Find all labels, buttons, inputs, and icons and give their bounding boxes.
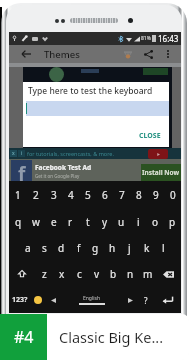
staticText: y bbox=[102, 215, 108, 229]
staticText: f bbox=[77, 241, 81, 255]
button[interactable]: t bbox=[79, 208, 96, 235]
button[interactable]: z bbox=[35, 261, 53, 287]
staticText: f bbox=[18, 161, 26, 182]
button[interactable]: 123? bbox=[9, 287, 31, 313]
staticText: k bbox=[144, 241, 150, 255]
staticText: ? bbox=[144, 295, 148, 306]
staticText: e bbox=[51, 215, 57, 229]
staticText: 7 bbox=[119, 188, 125, 202]
staticText: 5 bbox=[85, 188, 91, 202]
button[interactable]: g bbox=[87, 235, 104, 261]
staticText: u bbox=[118, 215, 125, 229]
button[interactable]: Close ad bbox=[10, 150, 17, 157]
button[interactable]: p bbox=[164, 208, 181, 235]
staticText: Type here to test the keyboard bbox=[28, 85, 153, 97]
staticText: #4 bbox=[14, 326, 34, 348]
staticText: 4 bbox=[68, 188, 74, 202]
button[interactable]: Enter bbox=[154, 287, 181, 313]
button[interactable]: 6 bbox=[96, 181, 113, 208]
button[interactable]: 9 bbox=[147, 181, 164, 208]
button[interactable]: 3 bbox=[45, 181, 62, 208]
staticText: 8 bbox=[136, 188, 142, 202]
button[interactable]: h bbox=[104, 235, 121, 261]
button[interactable]: x bbox=[53, 261, 71, 287]
button[interactable]: d bbox=[53, 235, 70, 261]
staticText: n bbox=[127, 267, 134, 281]
button[interactable]: o bbox=[147, 208, 164, 235]
staticText: g bbox=[92, 241, 99, 255]
staticText: b bbox=[110, 267, 117, 281]
button[interactable]: Space bbox=[61, 287, 122, 313]
button[interactable]: Shift bbox=[9, 261, 35, 287]
staticText: for tutorials, screencasts, & more. bbox=[27, 150, 114, 157]
button[interactable]: q bbox=[9, 208, 27, 235]
staticText: r bbox=[68, 215, 73, 229]
button[interactable]: b bbox=[105, 261, 122, 287]
button[interactable]: 8 bbox=[130, 181, 147, 208]
staticText: t bbox=[86, 215, 90, 229]
button[interactable]: v bbox=[88, 261, 105, 287]
staticText: English bbox=[83, 295, 101, 302]
staticText: c bbox=[77, 267, 82, 281]
button[interactable]: r bbox=[62, 208, 79, 235]
button[interactable]: w bbox=[27, 208, 45, 235]
staticText: 0 bbox=[170, 188, 176, 202]
staticText: v bbox=[94, 267, 100, 281]
button[interactable]: More options bbox=[162, 45, 174, 63]
button[interactable]: Back bbox=[18, 45, 34, 63]
button[interactable]: #4 bbox=[0, 314, 189, 360]
button[interactable]: Previous language bbox=[45, 287, 61, 313]
staticText: 2 bbox=[33, 188, 39, 202]
staticText: l bbox=[162, 241, 165, 255]
button[interactable]: Apply theme bbox=[120, 45, 136, 63]
staticText: 16:43 bbox=[158, 33, 179, 44]
button[interactable]: 4 bbox=[62, 181, 79, 208]
staticText: z bbox=[42, 267, 47, 281]
staticText: p bbox=[169, 215, 176, 229]
staticText: q bbox=[15, 215, 22, 229]
staticText: a bbox=[25, 241, 31, 255]
button[interactable]: 7 bbox=[113, 181, 130, 208]
staticText: i bbox=[137, 215, 140, 229]
button[interactable]: Backspace bbox=[156, 261, 181, 287]
button[interactable]: m bbox=[139, 261, 156, 287]
staticText: CLOSE bbox=[139, 131, 161, 141]
staticText: d bbox=[58, 241, 65, 255]
button[interactable]: u bbox=[113, 208, 130, 235]
button[interactable]: s bbox=[36, 235, 53, 261]
button[interactable]: Install Now bbox=[141, 164, 181, 181]
button[interactable]: 5 bbox=[79, 181, 96, 208]
button[interactable]: c bbox=[71, 261, 88, 287]
staticText: m bbox=[143, 267, 153, 281]
button[interactable]: j bbox=[121, 235, 138, 261]
staticText: j bbox=[128, 241, 131, 255]
staticText: x bbox=[59, 267, 65, 281]
button[interactable]: 0 bbox=[164, 181, 181, 208]
button[interactable]: 2 bbox=[27, 181, 45, 208]
button[interactable]: y bbox=[96, 208, 113, 235]
staticText: 1 bbox=[15, 188, 21, 202]
staticText: x bbox=[12, 150, 15, 157]
staticText: h bbox=[109, 241, 116, 255]
staticText: Facebook Test Ad bbox=[35, 163, 92, 172]
button[interactable]: a bbox=[19, 235, 36, 261]
button[interactable]: Emoji bbox=[31, 287, 45, 313]
button[interactable]: Next language bbox=[122, 287, 138, 313]
button[interactable]: n bbox=[122, 261, 139, 287]
button[interactable]: Share bbox=[141, 45, 156, 63]
staticText: o bbox=[152, 215, 159, 229]
staticText: 6 bbox=[102, 188, 108, 202]
button[interactable]: ? bbox=[138, 287, 154, 313]
button[interactable]: i bbox=[130, 208, 147, 235]
staticText: 9 bbox=[153, 188, 159, 202]
button[interactable]: 1 bbox=[9, 181, 27, 208]
staticText: 3 bbox=[51, 188, 57, 202]
staticText: Install Now bbox=[142, 168, 180, 177]
button[interactable]: e bbox=[45, 208, 62, 235]
button[interactable]: k bbox=[138, 235, 155, 261]
button[interactable]: f bbox=[70, 235, 87, 261]
button[interactable]: l bbox=[155, 235, 172, 261]
staticText: s bbox=[42, 241, 47, 255]
staticText: Classic Big Ke... bbox=[59, 327, 164, 347]
button[interactable]: CLOSE bbox=[131, 130, 169, 142]
